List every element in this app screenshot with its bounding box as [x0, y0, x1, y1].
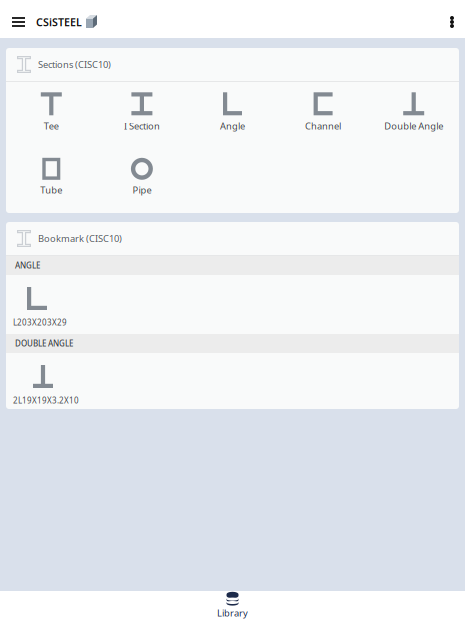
button[interactable]: Channel: [278, 91, 368, 133]
button[interactable]: Menu: [0, 6, 36, 38]
button[interactable]: I Section: [97, 91, 187, 133]
staticText: Pipe: [132, 184, 151, 196]
button[interactable]: Library: [187, 591, 277, 620]
staticText: 2L19X19X3.2X10: [13, 395, 79, 406]
button[interactable]: L203X203X29: [6, 275, 459, 334]
staticText: Channel: [305, 120, 341, 132]
staticText: DOUBLE ANGLE: [15, 338, 73, 349]
staticText: Bookmark (CISC10): [38, 232, 122, 245]
button[interactable]: Tee: [6, 91, 97, 133]
button[interactable]: 2L19X19X3.2X10: [6, 353, 459, 409]
button[interactable]: Pipe: [97, 156, 187, 198]
button[interactable]: Double Angle: [368, 91, 459, 133]
button[interactable]: More options: [437, 6, 465, 38]
staticText: Angle: [220, 120, 245, 132]
staticText: ANGLE: [15, 260, 40, 271]
staticText: Double Angle: [384, 120, 443, 132]
staticText: Library: [217, 607, 248, 619]
staticText: I Section: [124, 120, 160, 132]
staticText: Tube: [40, 184, 62, 196]
button[interactable]: Angle: [187, 91, 278, 133]
staticText: Sections (CISC10): [38, 58, 111, 71]
button[interactable]: Tube: [6, 156, 97, 198]
staticText: CSiSTEEL: [36, 15, 82, 29]
staticText: Tee: [44, 120, 59, 132]
staticText: L203X203X29: [13, 317, 67, 328]
